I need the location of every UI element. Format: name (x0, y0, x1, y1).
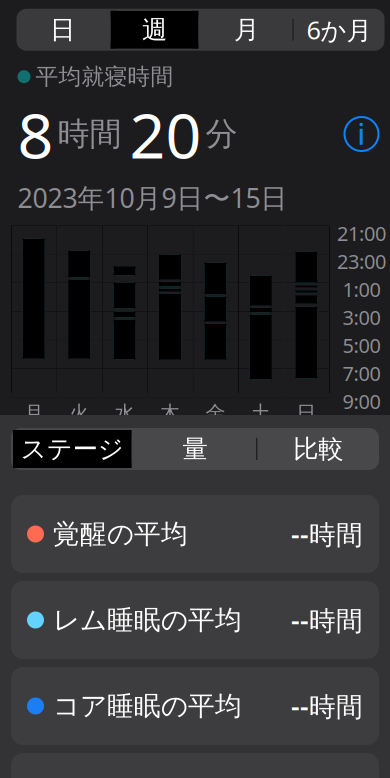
staticText: ステージ (21, 433, 124, 464)
staticText: 7:00 (342, 360, 380, 387)
staticText: コア睡眠の平均 (53, 690, 242, 722)
staticText: --時間 (291, 602, 363, 638)
staticText: 1:00 (342, 276, 380, 303)
staticText: 時間 (57, 115, 121, 154)
staticText: 5:00 (342, 332, 380, 359)
staticText: --時間 (291, 516, 363, 552)
staticText: 2023年10月9日〜15日 (17, 180, 287, 215)
button[interactable]: コア睡眠の平均 (11, 667, 379, 745)
staticText: 土 (251, 401, 271, 426)
staticText: 日 (50, 14, 75, 45)
staticText: 20 (129, 93, 201, 176)
staticText: 8 (17, 93, 53, 176)
staticText: --時間 (291, 688, 363, 724)
button[interactable]: 月 (200, 9, 292, 51)
staticText: 21:00 (337, 220, 386, 247)
staticText: 分 (205, 115, 237, 154)
staticText: 火 (69, 401, 89, 426)
button[interactable]: 日 (16, 9, 108, 51)
button[interactable]: レム睡眠の平均 (11, 581, 379, 659)
button[interactable]: 6か月 (292, 9, 384, 51)
button[interactable]: 覚醒の平均 (11, 495, 379, 573)
staticText: 週 (142, 14, 167, 45)
button[interactable]: 比較 (256, 428, 379, 470)
staticText: i (357, 115, 365, 153)
staticText: 9:00 (342, 388, 380, 415)
button[interactable]: 量 (134, 428, 256, 470)
staticText: 23:00 (337, 248, 386, 275)
staticText: 3:00 (342, 304, 380, 331)
staticText: 覚醒の平均 (53, 518, 188, 550)
button[interactable]: ステージ (11, 428, 134, 470)
staticText: 金 (205, 401, 225, 426)
button[interactable]: 詳細情報 (339, 112, 383, 156)
staticText: 月 (24, 401, 44, 426)
staticText: 平均就寝時間 (35, 63, 173, 91)
staticText: 比較 (293, 433, 343, 464)
staticText: 水 (115, 401, 135, 426)
staticText: レム睡眠の平均 (53, 604, 242, 636)
staticText: 月 (234, 14, 259, 45)
staticText: 6か月 (306, 13, 371, 46)
staticText: 量 (182, 433, 207, 464)
staticText: 木 (160, 401, 180, 426)
button[interactable]: 週 (108, 9, 200, 51)
staticText: 日 (296, 401, 316, 426)
